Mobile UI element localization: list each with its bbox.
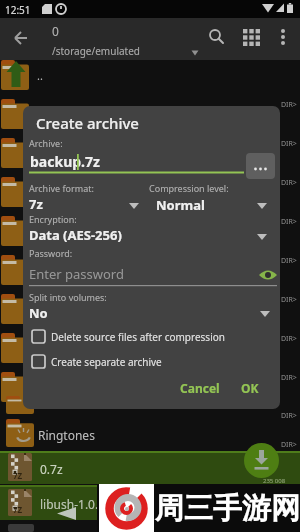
staticText: 7Z xyxy=(13,504,23,515)
staticText: DIR> xyxy=(281,217,297,227)
staticText: DIR> xyxy=(281,178,297,188)
staticText: /storage/emulated xyxy=(52,44,140,58)
staticText: 7Z xyxy=(13,470,23,481)
button[interactable]: No xyxy=(29,304,268,322)
button[interactable] xyxy=(204,24,230,50)
staticText: Data (AES-256) xyxy=(29,226,122,244)
staticText: Password: xyxy=(29,247,73,259)
button[interactable] xyxy=(29,352,269,371)
staticText: 7z xyxy=(29,195,43,213)
button[interactable] xyxy=(239,24,265,50)
button[interactable] xyxy=(0,485,300,520)
button[interactable]: Enter password xyxy=(29,265,249,285)
staticText: DIR> xyxy=(281,139,297,149)
staticText: DIR> xyxy=(281,411,297,421)
button[interactable]: Data (AES-256) xyxy=(29,226,268,244)
staticText: Ringtones xyxy=(38,427,95,443)
staticText: OK xyxy=(241,380,259,396)
button[interactable]: 周三手游网 xyxy=(97,484,300,532)
staticText: 周三手游网 xyxy=(155,490,300,527)
button[interactable]: Normal xyxy=(156,196,268,214)
staticText: Compression level: xyxy=(149,182,229,194)
button[interactable] xyxy=(6,26,34,52)
staticText: DIR> xyxy=(281,334,297,344)
staticText: Delete source files after compression xyxy=(51,330,225,344)
staticText: Create archive xyxy=(36,113,139,133)
staticText: 235 008 xyxy=(263,477,286,485)
staticText: Archive format: xyxy=(29,182,94,194)
staticText: .. xyxy=(37,68,43,83)
staticText: 12:51 xyxy=(5,3,31,17)
staticText: DIR> xyxy=(281,100,297,110)
staticText: Archive: xyxy=(29,137,63,149)
staticText: Split into volumes: xyxy=(29,291,107,303)
staticText: 0.7z xyxy=(40,461,63,477)
button[interactable] xyxy=(272,24,294,50)
staticText: 0 xyxy=(52,23,59,39)
button[interactable]: 7z xyxy=(29,195,141,213)
button[interactable]: Cancel xyxy=(172,376,228,400)
staticText: Create separate archive xyxy=(51,355,162,369)
button[interactable]: OK xyxy=(230,376,270,400)
staticText: DIR> xyxy=(281,440,297,450)
staticText: Normal xyxy=(156,196,205,214)
staticText: Enter password xyxy=(29,265,124,283)
staticText: backup.7z xyxy=(30,152,100,171)
button[interactable] xyxy=(246,153,275,179)
staticText: libush-1.0.2... xyxy=(40,496,115,512)
staticText: DIR> xyxy=(281,256,297,266)
staticText: Encryption: xyxy=(29,213,77,225)
staticText: DIR> xyxy=(281,373,297,383)
button[interactable] xyxy=(29,327,269,346)
staticText: DIR> xyxy=(281,295,297,305)
button[interactable] xyxy=(0,451,300,484)
button[interactable] xyxy=(244,443,279,478)
staticText: Cancel xyxy=(180,380,220,396)
staticText: No xyxy=(29,304,48,322)
